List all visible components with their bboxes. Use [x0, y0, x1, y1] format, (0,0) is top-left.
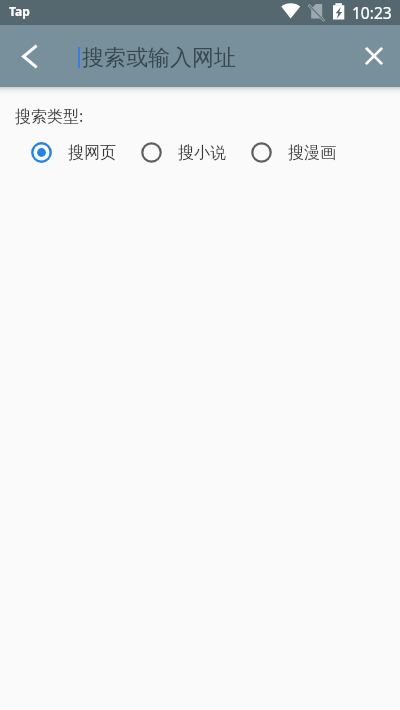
- button[interactable]: 搜小说: [131, 139, 238, 166]
- button[interactable]: Clear: [350, 32, 398, 80]
- button[interactable]: 搜索或输入网址: [78, 36, 344, 76]
- button[interactable]: Back: [5, 32, 53, 80]
- button[interactable]: 搜漫画: [241, 139, 348, 166]
- button[interactable]: 搜网页: [21, 139, 128, 166]
- staticText: 搜索类型:: [15, 105, 84, 127]
- staticText: 搜小说: [178, 143, 226, 163]
- staticText: 搜漫画: [288, 143, 336, 163]
- staticText: Tap: [9, 3, 30, 19]
- staticText: 搜网页: [68, 143, 116, 163]
- staticText: 10:23: [352, 2, 392, 23]
- staticText: 搜索或输入网址: [82, 44, 236, 72]
